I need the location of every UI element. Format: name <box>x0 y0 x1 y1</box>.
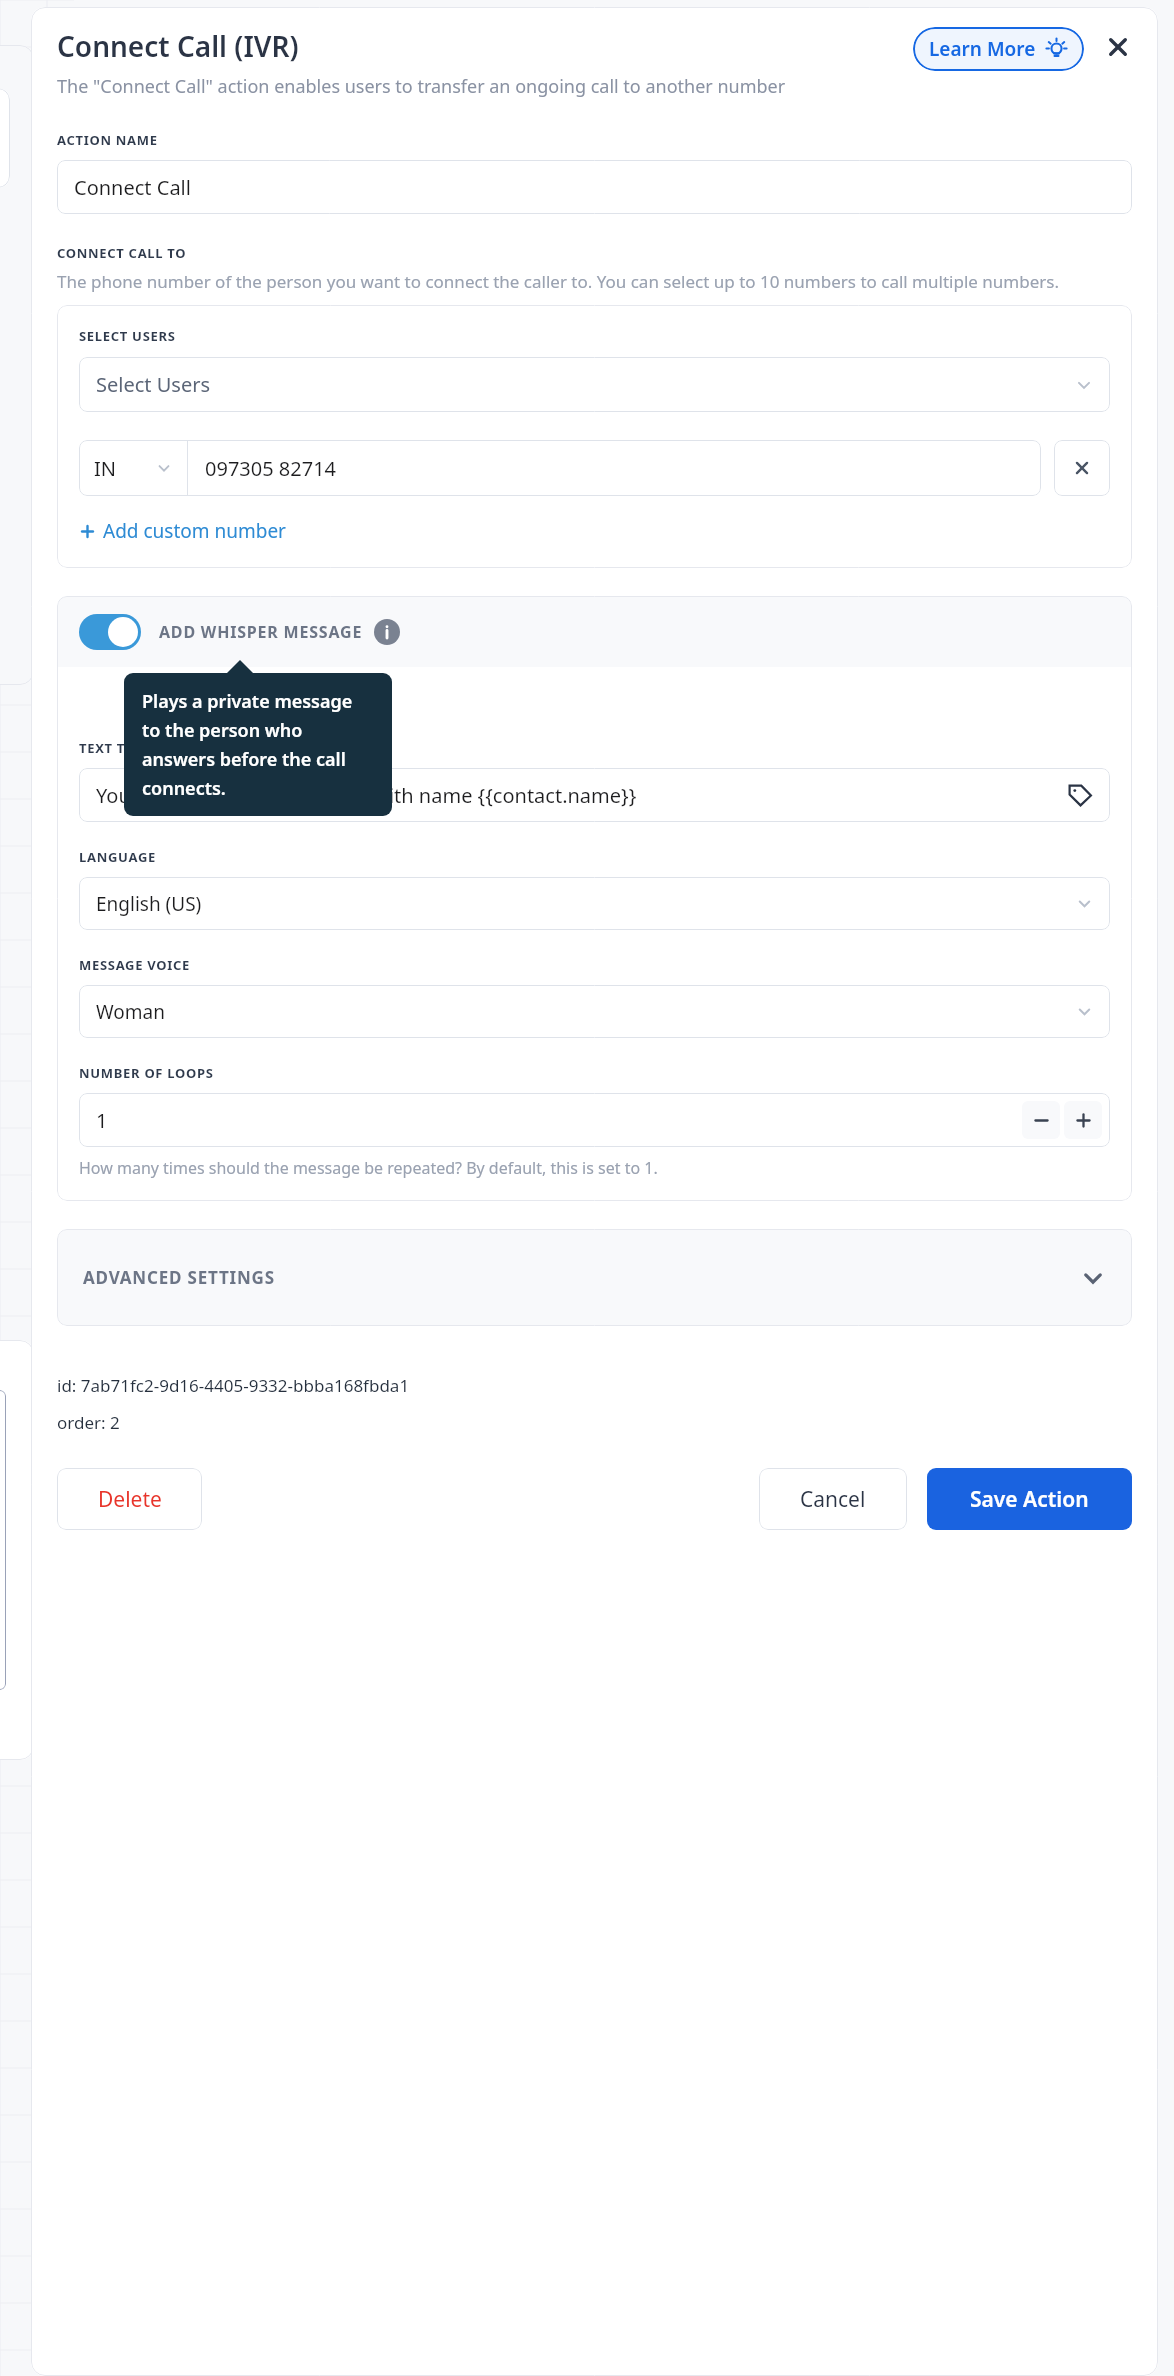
button[interactable]: Close <box>1098 27 1138 67</box>
staticText: id: 7ab71fc2-9d16-4405-9332-bbba168fbda1 <box>57 1374 410 1397</box>
staticText: MESSAGE VOICE <box>79 956 191 974</box>
staticText: 1 <box>96 1107 108 1134</box>
other: Add whisper message toggle <box>79 614 141 650</box>
staticText: Plays a private message to the person wh… <box>142 689 374 800</box>
button[interactable]: 097305 82714 <box>188 440 1041 496</box>
staticText: IN <box>94 455 116 482</box>
staticText: 097305 82714 <box>205 455 337 482</box>
staticText: ADD WHISPER MESSAGE <box>159 621 363 643</box>
button[interactable]: Cancel <box>759 1468 907 1530</box>
button[interactable]: Increase <box>1064 1101 1102 1139</box>
button[interactable]: You have got a call from user with name … <box>79 768 1110 822</box>
staticText: Delete <box>98 1485 162 1514</box>
staticText: English (US) <box>96 891 202 917</box>
staticText: LANGUAGE <box>79 848 156 866</box>
staticText: CONNECT CALL TO <box>57 244 187 262</box>
staticText: ADVANCED SETTINGS <box>83 1266 275 1289</box>
button[interactable]: Decrease <box>1022 1101 1060 1139</box>
staticText: You have got a call from user with name … <box>96 782 637 809</box>
staticText: ACTION NAME <box>57 131 158 149</box>
staticText: order: 2 <box>57 1411 120 1434</box>
staticText: Select Users <box>96 371 211 398</box>
staticText: Woman <box>96 999 165 1025</box>
button[interactable]: English (US) <box>79 877 1110 930</box>
button[interactable]: ADVANCED SETTINGS <box>57 1229 1132 1326</box>
button[interactable]: Info <box>374 619 400 645</box>
button[interactable]: Learn More <box>913 27 1084 71</box>
staticText: TEXT TO SAY <box>79 739 166 757</box>
button[interactable]: Select Users <box>79 357 1110 412</box>
staticText: SELECT USERS <box>79 327 176 345</box>
staticText: Learn More <box>929 36 1036 62</box>
staticText: How many times should the message be rep… <box>79 1157 658 1179</box>
button[interactable]: Remove number <box>1054 440 1110 496</box>
button[interactable]: Delete <box>57 1468 202 1530</box>
button[interactable]: Add custom number <box>79 516 286 546</box>
staticText: Connect Call (IVR) <box>57 27 299 65</box>
staticText: Save Action <box>970 1485 1089 1514</box>
staticText: NUMBER OF LOOPS <box>79 1064 214 1082</box>
button[interactable]: Woman <box>79 985 1110 1038</box>
button[interactable]: Add whisper message toggle <box>57 596 1132 667</box>
staticText: Cancel <box>800 1485 866 1514</box>
staticText: The "Connect Call" action enables users … <box>57 74 786 99</box>
staticText: The phone number of the person you want … <box>57 270 1059 293</box>
button[interactable]: Save Action <box>927 1468 1132 1530</box>
button[interactable]: IN <box>79 440 187 496</box>
staticText: Add custom number <box>103 518 286 544</box>
button[interactable]: Connect Call <box>57 160 1132 214</box>
button[interactable]: Insert variable <box>1067 782 1093 808</box>
staticText: Connect Call <box>74 174 191 201</box>
